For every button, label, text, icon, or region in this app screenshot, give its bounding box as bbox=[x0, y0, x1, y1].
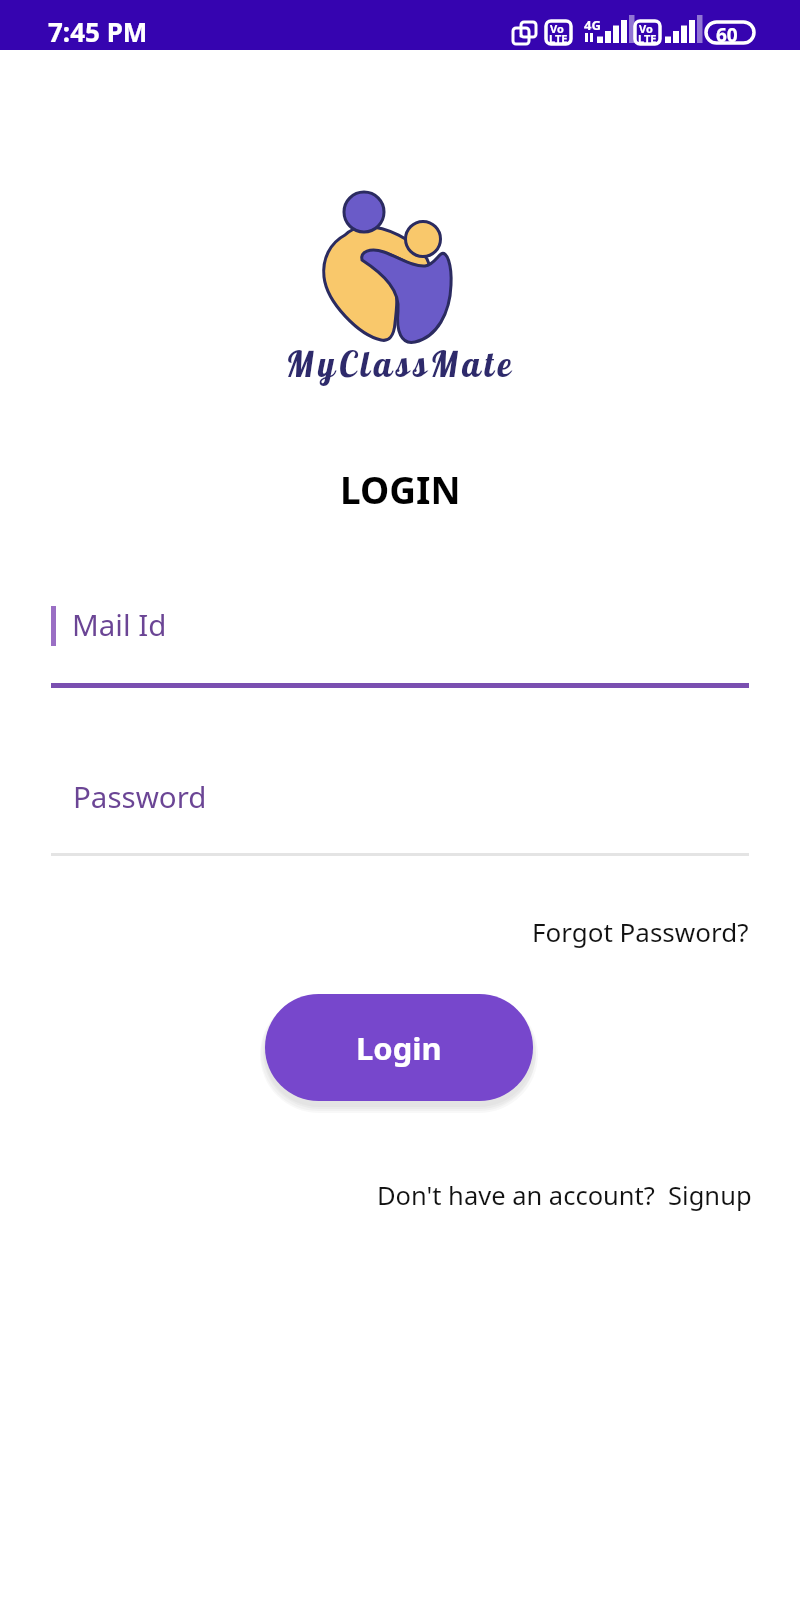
other: Status icons bbox=[508, 18, 758, 46]
staticText: Mail Id bbox=[72, 604, 167, 644]
button[interactable]: Don't have an account? Signup bbox=[377, 1178, 752, 1213]
staticText: 60 bbox=[716, 22, 738, 48]
button[interactable]: Password bbox=[51, 766, 749, 856]
staticText: 4G bbox=[584, 16, 601, 34]
button[interactable]: Mail Id bbox=[51, 592, 749, 688]
staticText: Forgot Password? bbox=[532, 914, 749, 949]
staticText: MyClassMate bbox=[286, 342, 515, 386]
staticText: Login bbox=[356, 1027, 442, 1069]
staticText: 7:45 PM bbox=[48, 14, 148, 49]
staticText: Vo bbox=[550, 21, 564, 36]
staticText: LTE bbox=[549, 31, 568, 46]
button[interactable]: Forgot Password? bbox=[532, 914, 749, 949]
staticText: Vo bbox=[639, 21, 653, 36]
staticText: LOGIN bbox=[340, 464, 461, 514]
staticText: Password bbox=[73, 776, 207, 816]
staticText: LTE bbox=[638, 31, 657, 46]
staticText: Don't have an account? Signup bbox=[377, 1178, 752, 1213]
button[interactable]: Login bbox=[265, 994, 533, 1101]
